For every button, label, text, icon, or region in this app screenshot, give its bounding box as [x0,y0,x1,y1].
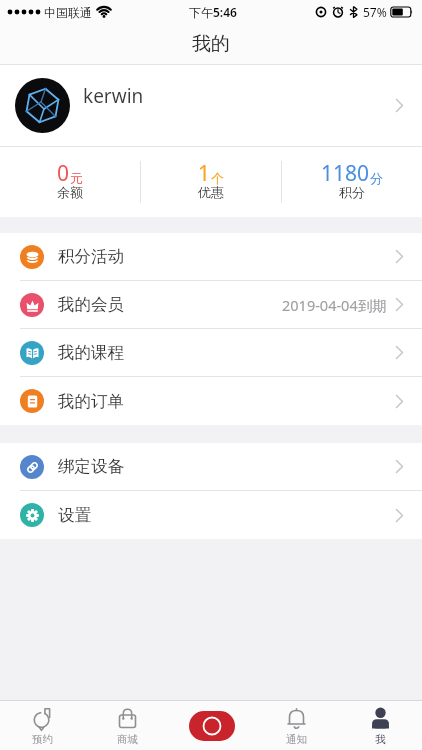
staticText: 商城 [117,733,138,746]
button[interactable]: 绑定设备 [0,443,422,491]
staticText: 预约 [32,733,53,746]
staticText: 通知 [286,733,307,746]
button[interactable]: 通知 [254,701,338,750]
button[interactable]: 预约 [0,701,85,750]
button[interactable]: 我的会员 [0,281,422,329]
staticText: 1180 [321,159,370,188]
button[interactable]: 我的订单 [0,377,422,425]
staticText: 我的课程 [58,342,124,363]
staticText: 积分活动 [58,246,124,267]
staticText: 我的订单 [58,391,124,412]
button[interactable]: 0 [0,147,140,217]
staticText: 分 [370,170,383,186]
button[interactable]: 1 [141,147,281,217]
staticText: 个 [211,170,224,186]
staticText: 余额 [57,184,83,200]
staticText: 57% [363,4,387,20]
button[interactable]: 商城 [85,701,170,750]
staticText: 2019-04-04到期 [282,295,387,315]
staticText: 元 [70,170,83,186]
staticText: 绑定设备 [58,456,124,477]
button[interactable]: 积分活动 [0,233,422,281]
staticText: 积分 [339,184,365,200]
staticText: 我 [375,733,386,746]
staticText: kerwin [83,83,144,109]
staticText: 中国联通 [44,5,92,20]
button[interactable]: kerwin [0,65,422,146]
button[interactable]: 我的课程 [0,329,422,377]
button[interactable] [170,701,254,750]
staticText: 0 [57,159,70,188]
staticText: 1 [198,159,211,188]
staticText: 我的 [192,32,230,56]
staticText: 下午5:46 [189,4,237,20]
button[interactable]: 设置 [0,491,422,539]
staticText: 优惠 [198,184,224,200]
button[interactable]: 我 [338,701,422,750]
button[interactable]: 1180 [282,147,422,217]
staticText: 设置 [58,505,91,526]
staticText: 我的会员 [58,294,124,315]
